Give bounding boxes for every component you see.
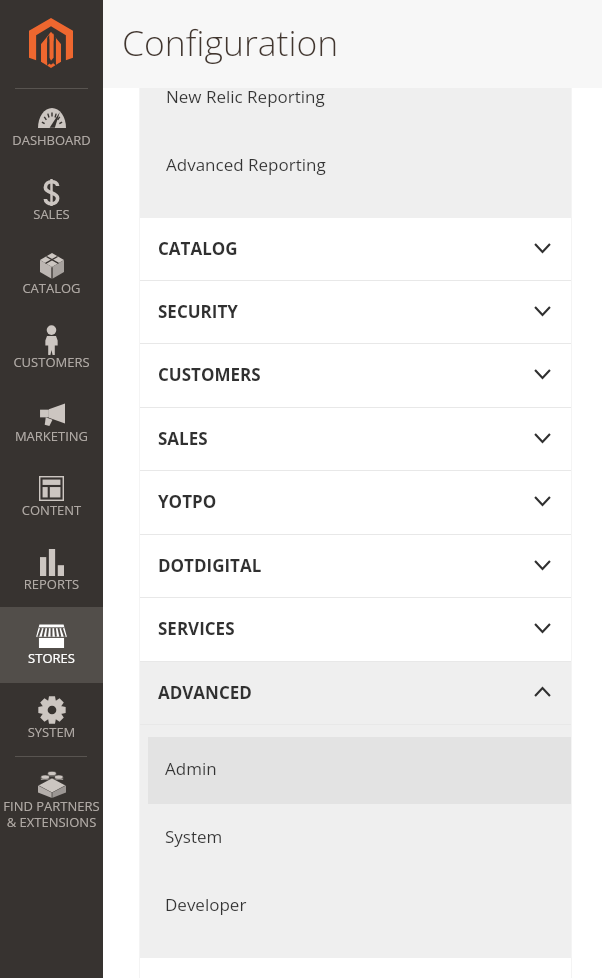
staticText: FIND PARTNERS & EXTENSIONS xyxy=(0,797,103,830)
staticText: DASHBOARD xyxy=(0,131,103,149)
button[interactable]: FIND PARTNERS & EXTENSIONS xyxy=(0,755,103,831)
button[interactable]: Advanced Reporting xyxy=(139,130,572,198)
button[interactable]: CONTENT xyxy=(0,459,103,535)
staticText: SYSTEM xyxy=(0,723,103,741)
button[interactable]: CATALOG xyxy=(0,237,103,313)
button[interactable]: Admin xyxy=(148,737,572,804)
button[interactable]: Developer xyxy=(148,873,572,940)
button[interactable]: SALES xyxy=(0,163,103,239)
staticText: SALES xyxy=(158,427,208,450)
staticText: CUSTOMERS xyxy=(158,363,261,386)
button[interactable]: MARKETING xyxy=(0,385,103,461)
staticText: SERVICES xyxy=(158,617,235,640)
staticText: SALES xyxy=(0,205,103,223)
staticText: Configuration xyxy=(122,18,339,66)
button[interactable]: SYSTEM xyxy=(0,681,103,757)
button[interactable]: REPORTS xyxy=(0,533,103,609)
staticText: CONTENT xyxy=(0,501,103,519)
button[interactable]: ADVANCED xyxy=(139,662,572,727)
button[interactable]: SALES xyxy=(139,408,572,473)
staticText: CATALOG xyxy=(0,279,103,297)
button[interactable]: Magento home xyxy=(0,0,103,88)
staticText: STORES xyxy=(0,649,103,667)
staticText: DOTDIGITAL xyxy=(158,554,262,577)
staticText: ADVANCED xyxy=(158,681,252,704)
staticText: REPORTS xyxy=(0,575,103,593)
staticText: System xyxy=(165,825,223,848)
staticText: YOTPO xyxy=(158,490,217,513)
button[interactable]: New Relic Reporting xyxy=(139,62,572,130)
button[interactable]: SERVICES xyxy=(139,598,572,663)
staticText: Developer xyxy=(165,893,247,916)
staticText: Admin xyxy=(165,757,217,780)
button[interactable]: CUSTOMERS xyxy=(139,344,572,409)
button[interactable]: STORES xyxy=(0,607,103,683)
staticText: Advanced Reporting xyxy=(166,153,326,176)
staticText: SECURITY xyxy=(158,300,238,323)
button[interactable]: DOTDIGITAL xyxy=(139,535,572,600)
button[interactable]: DASHBOARD xyxy=(0,89,103,165)
button[interactable]: SECURITY xyxy=(139,281,572,346)
button[interactable]: CUSTOMERS xyxy=(0,311,103,387)
button[interactable]: CATALOG xyxy=(139,218,572,283)
staticText: New Relic Reporting xyxy=(166,85,325,108)
staticText: MARKETING xyxy=(0,427,103,445)
button[interactable]: System xyxy=(148,805,572,872)
staticText: CUSTOMERS xyxy=(0,353,103,371)
staticText: CATALOG xyxy=(158,237,238,260)
button[interactable]: YOTPO xyxy=(139,471,572,536)
